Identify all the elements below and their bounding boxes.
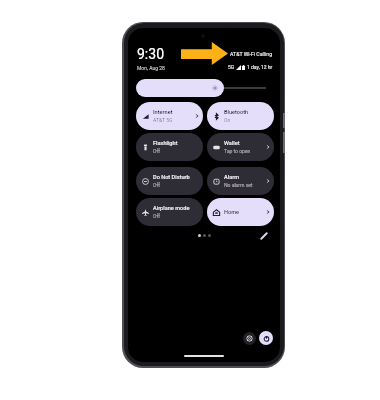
button[interactable]: Home: [207, 198, 274, 226]
staticText: 9:30: [137, 46, 164, 62]
staticText: Off: [153, 182, 160, 188]
button[interactable]: Power: [259, 331, 273, 345]
staticText: 5G: [228, 64, 235, 70]
staticText: Off: [153, 148, 160, 154]
button[interactable]: Wallet: [207, 133, 274, 161]
staticText: Internet: [153, 109, 173, 116]
staticText: Off: [153, 213, 160, 219]
button[interactable]: Brightness: [136, 79, 224, 97]
staticText: Bluetooth: [224, 109, 249, 116]
staticText: Wallet: [224, 140, 240, 147]
staticText: 1 day, 12 hr: [247, 64, 273, 70]
staticText: Flashlight: [153, 140, 178, 147]
button[interactable]: Flashlight: [136, 133, 203, 161]
button[interactable]: Edit tiles: [256, 228, 271, 243]
staticText: Home: [224, 209, 240, 216]
staticText: AT&T 5G: [153, 117, 173, 123]
staticText: AT&T Wi-Fi Calling: [230, 51, 273, 57]
staticText: Mon, Aug 28: [137, 65, 165, 71]
staticText: No alarm set: [224, 182, 253, 188]
staticText: Do Not Disturb: [153, 174, 190, 181]
staticText: Airplane mode: [153, 205, 190, 212]
button[interactable]: Bluetooth: [207, 102, 274, 130]
button[interactable]: Alarm: [207, 167, 274, 195]
button[interactable]: Do Not Disturb: [136, 167, 203, 195]
button[interactable]: Airplane mode: [136, 198, 203, 226]
button[interactable]: Settings: [243, 332, 256, 345]
staticText: Tap to open: [224, 148, 251, 154]
staticText: On: [224, 117, 231, 123]
button[interactable]: Internet: [136, 102, 203, 130]
staticText: Alarm: [224, 174, 240, 181]
